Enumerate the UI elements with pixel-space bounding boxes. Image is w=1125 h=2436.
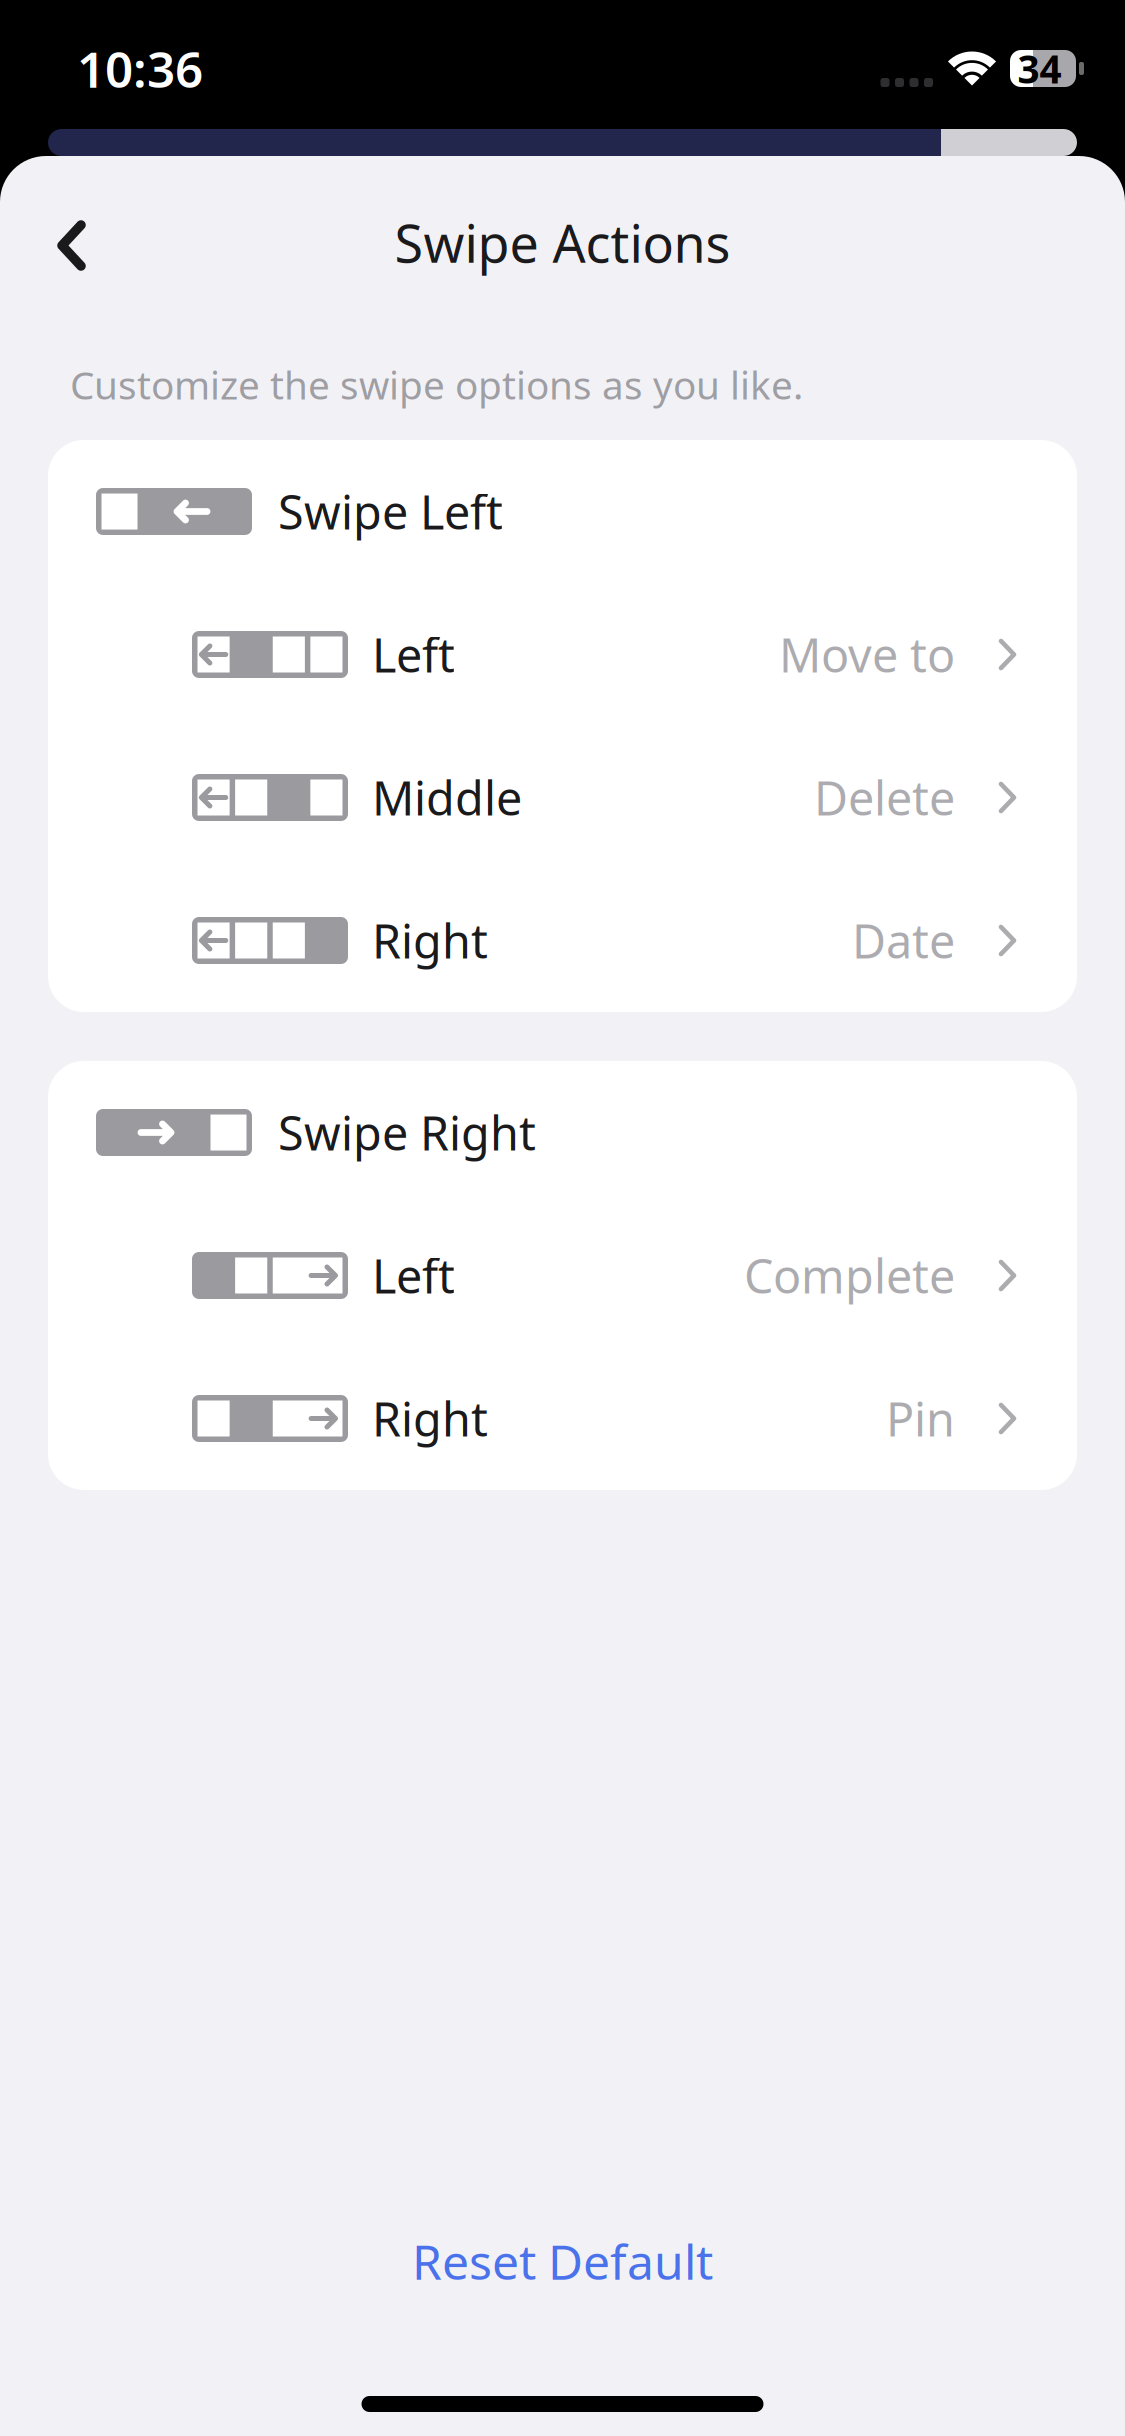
staticText: 34	[1017, 43, 1061, 94]
staticText: Reset Default	[412, 2229, 713, 2293]
staticText: Move to	[779, 623, 955, 685]
button[interactable]: Right	[48, 1347, 1077, 1490]
staticText: Left	[372, 1244, 455, 1306]
staticText: Delete	[814, 766, 955, 828]
staticText: Left	[372, 623, 455, 685]
staticText: Right	[372, 909, 488, 971]
staticText: Middle	[372, 766, 522, 828]
staticText: Swipe Actions	[394, 208, 730, 277]
button[interactable]: Left	[48, 1204, 1077, 1347]
staticText: Customize the swipe options as you like.	[70, 359, 803, 410]
button[interactable]: Reset Default	[368, 2207, 757, 2315]
staticText: Complete	[744, 1244, 955, 1306]
staticText: Pin	[886, 1387, 955, 1449]
button[interactable]: Right	[48, 869, 1077, 1012]
staticText: 10:36	[77, 36, 203, 101]
button[interactable]: Left	[48, 583, 1077, 726]
staticText: Swipe Left	[278, 480, 503, 542]
button[interactable]: Middle	[48, 726, 1077, 869]
staticText: Right	[372, 1387, 488, 1449]
staticText: Swipe Right	[278, 1101, 536, 1163]
button[interactable]: Back	[26, 172, 117, 313]
staticText: Date	[852, 909, 955, 971]
